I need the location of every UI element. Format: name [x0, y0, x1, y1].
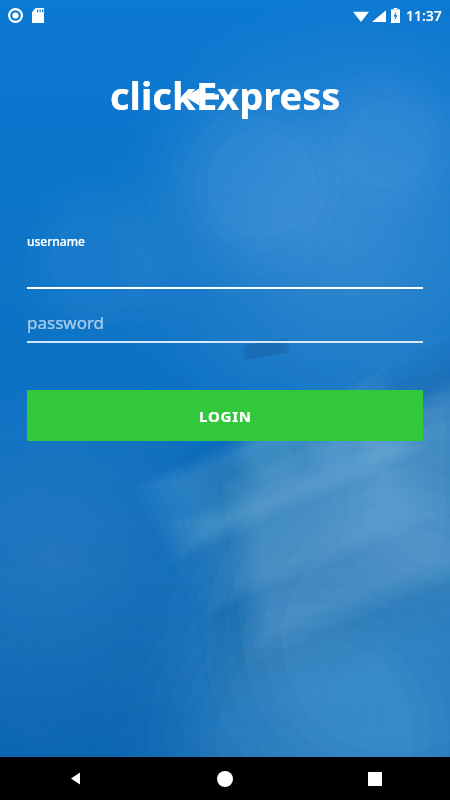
button[interactable]: password [27, 309, 423, 343]
staticText: password [27, 311, 105, 334]
staticText: click [110, 69, 196, 121]
staticText: username [27, 233, 85, 249]
staticText: Express [196, 69, 341, 121]
staticText: 11:37 [406, 6, 442, 25]
button[interactable]: LOGIN [27, 390, 423, 441]
button[interactable]: username [27, 233, 423, 289]
button[interactable]: Back [0, 757, 150, 800]
staticText: LOGIN [199, 406, 252, 426]
button[interactable]: Home [150, 757, 300, 800]
button[interactable]: Recent apps [300, 757, 450, 800]
